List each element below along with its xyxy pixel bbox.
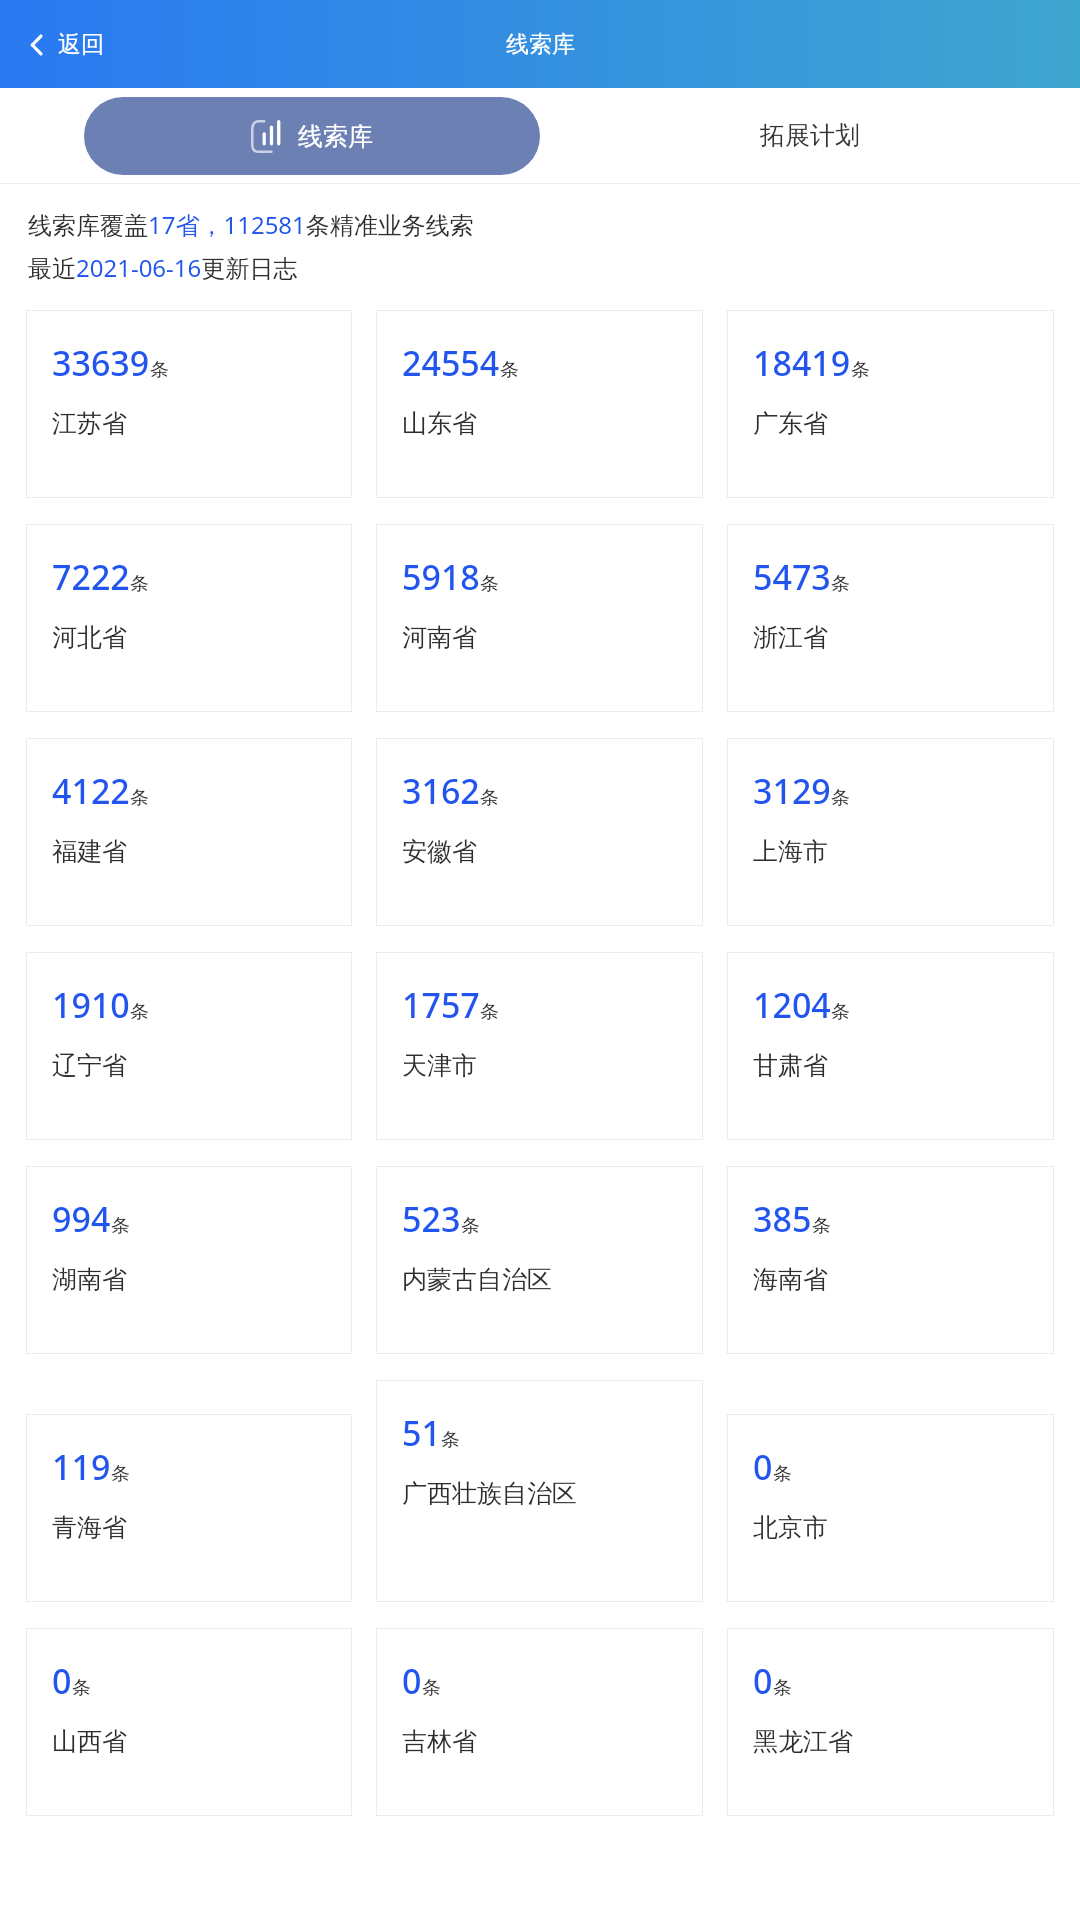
button[interactable]: 5473 — [727, 524, 1054, 712]
button[interactable]: 5918 — [376, 524, 703, 712]
staticText: 返回 — [58, 30, 104, 59]
staticText: 条 — [130, 1000, 149, 1024]
button[interactable]: 385 — [727, 1166, 1054, 1354]
staticText: 385 — [753, 1196, 812, 1242]
staticText: 4122 — [52, 768, 130, 814]
staticText: 山西省 — [52, 1726, 127, 1757]
button[interactable]: 523 — [376, 1166, 703, 1354]
staticText: 福建省 — [52, 836, 127, 867]
staticText: 7222 — [52, 554, 130, 600]
staticText: 条 — [831, 786, 850, 810]
staticText: 辽宁省 — [52, 1050, 127, 1081]
staticText: 条 — [500, 358, 519, 382]
staticText: 0 — [52, 1658, 72, 1704]
button[interactable]: 0 — [376, 1628, 703, 1816]
staticText: 条 — [480, 1000, 499, 1024]
staticText: 条 — [480, 786, 499, 810]
button[interactable]: 线索库 — [84, 97, 540, 175]
staticText: 条 — [773, 1462, 792, 1486]
staticText: 最近2021-06-16更新日志 — [28, 251, 298, 284]
staticText: 条 — [851, 358, 870, 382]
staticText: 黑龙江省 — [753, 1726, 853, 1757]
staticText: 条 — [130, 572, 149, 596]
button[interactable]: 119 — [26, 1414, 352, 1602]
button[interactable]: 1910 — [26, 952, 352, 1140]
staticText: 0 — [402, 1658, 422, 1704]
staticText: 线索库覆盖17省，112581条精准业务线索 — [28, 208, 474, 241]
staticText: 山东省 — [402, 408, 477, 439]
staticText: 青海省 — [52, 1512, 127, 1543]
staticText: 安徽省 — [402, 836, 477, 867]
staticText: 994 — [52, 1196, 111, 1242]
button[interactable]: 1204 — [727, 952, 1054, 1140]
button[interactable]: 返回 — [22, 24, 110, 65]
staticText: 18419 — [753, 340, 851, 386]
staticText: 1910 — [52, 982, 130, 1028]
staticText: 条 — [441, 1428, 460, 1452]
staticText: 线索库 — [298, 121, 373, 152]
staticText: 河南省 — [402, 622, 477, 653]
staticText: 吉林省 — [402, 1726, 477, 1757]
staticText: 海南省 — [753, 1264, 828, 1295]
staticText: 湖南省 — [52, 1264, 127, 1295]
staticText: 拓展计划 — [760, 120, 860, 151]
staticText: 33639 — [52, 340, 150, 386]
staticText: 条 — [422, 1676, 441, 1700]
staticText: 内蒙古自治区 — [402, 1264, 552, 1295]
staticText: 条 — [111, 1462, 130, 1486]
staticText: 24554 — [402, 340, 500, 386]
staticText: 江苏省 — [52, 408, 127, 439]
staticText: 条 — [831, 1000, 850, 1024]
staticText: 广东省 — [753, 408, 828, 439]
staticText: 条 — [773, 1676, 792, 1700]
button[interactable]: 7222 — [26, 524, 352, 712]
button[interactable]: 994 — [26, 1166, 352, 1354]
staticText: 3129 — [753, 768, 831, 814]
button[interactable]: 1757 — [376, 952, 703, 1140]
button[interactable]: 24554 — [376, 310, 703, 498]
button[interactable]: 拓展计划 — [540, 88, 1080, 183]
staticText: 条 — [480, 572, 499, 596]
staticText: 条 — [461, 1214, 480, 1238]
staticText: 119 — [52, 1444, 111, 1490]
button[interactable]: 0 — [727, 1628, 1054, 1816]
staticText: 甘肃省 — [753, 1050, 828, 1081]
button[interactable]: 0 — [727, 1414, 1054, 1602]
staticText: 条 — [812, 1214, 831, 1238]
staticText: 1204 — [753, 982, 831, 1028]
staticText: 条 — [150, 358, 169, 382]
button[interactable]: 4122 — [26, 738, 352, 926]
staticText: 3162 — [402, 768, 480, 814]
button[interactable]: 51 — [376, 1380, 703, 1602]
staticText: 上海市 — [753, 836, 828, 867]
staticText: 1757 — [402, 982, 480, 1028]
staticText: 51 — [402, 1410, 441, 1456]
button[interactable]: 33639 — [26, 310, 352, 498]
button[interactable]: 3162 — [376, 738, 703, 926]
staticText: 线索库 — [506, 30, 575, 59]
staticText: 条 — [831, 572, 850, 596]
staticText: 5473 — [753, 554, 831, 600]
staticText: 条 — [111, 1214, 130, 1238]
button[interactable]: 0 — [26, 1628, 352, 1816]
staticText: 广西壮族自治区 — [402, 1478, 577, 1509]
staticText: 北京市 — [753, 1512, 828, 1543]
staticText: 天津市 — [402, 1050, 477, 1081]
staticText: 河北省 — [52, 622, 127, 653]
staticText: 0 — [753, 1444, 773, 1490]
button[interactable]: 3129 — [727, 738, 1054, 926]
staticText: 0 — [753, 1658, 773, 1704]
staticText: 523 — [402, 1196, 461, 1242]
button[interactable]: 18419 — [727, 310, 1054, 498]
staticText: 5918 — [402, 554, 480, 600]
staticText: 条 — [130, 786, 149, 810]
staticText: 条 — [72, 1676, 91, 1700]
staticText: 浙江省 — [753, 622, 828, 653]
